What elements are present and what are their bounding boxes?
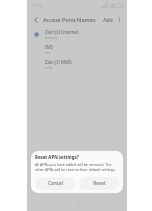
staticText: 10:25	[32, 3, 43, 9]
button[interactable]: Reset	[79, 177, 119, 190]
staticText: ims	[45, 51, 51, 55]
staticText: internet	[45, 36, 57, 40]
button[interactable]: Cancel	[35, 177, 75, 190]
staticText: Cancel	[48, 180, 63, 187]
staticText: Zain JO MMS	[45, 59, 72, 65]
button[interactable]: IMS	[27, 42, 127, 57]
staticText: Reset	[93, 180, 106, 187]
staticText: IMS	[45, 44, 54, 50]
button[interactable]: Zain JO MMS	[27, 57, 127, 72]
button[interactable]: Zain JO Internet	[27, 27, 127, 42]
button[interactable]: More options	[115, 15, 124, 24]
button[interactable]: Back	[30, 14, 41, 25]
staticText: Access Point Names	[43, 16, 96, 23]
staticText: Add	[103, 16, 113, 23]
staticText: Zain JO Internet	[45, 29, 79, 35]
staticText: mms	[45, 66, 53, 70]
staticText: All APNs you have added will be removed.…	[35, 162, 116, 172]
staticText: Reset APN settings?	[35, 154, 79, 160]
button[interactable]: Add	[101, 13, 115, 26]
